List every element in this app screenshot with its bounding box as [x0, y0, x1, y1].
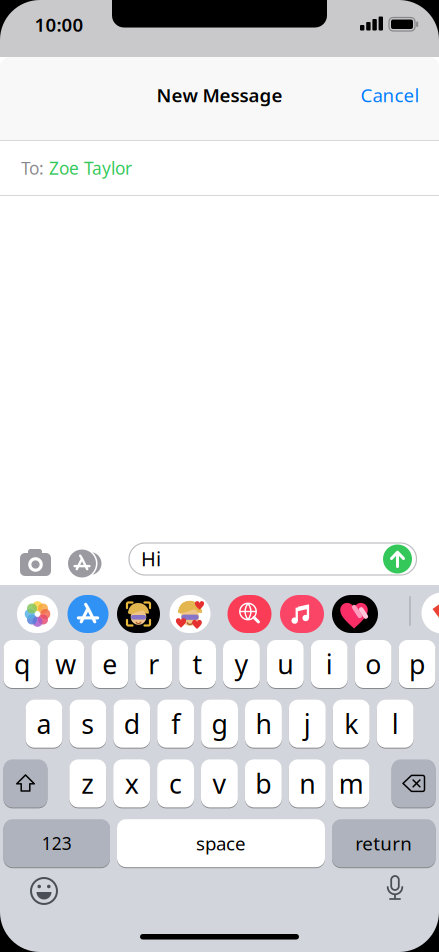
staticText: k: [344, 706, 358, 741]
button[interactable]: [14, 594, 60, 634]
staticText: h: [255, 706, 271, 741]
button[interactable]: s: [69, 699, 106, 749]
button[interactable]: p: [399, 639, 435, 689]
staticText: x: [125, 766, 139, 801]
button[interactable]: d: [113, 699, 150, 749]
button[interactable]: [65, 594, 111, 634]
staticText: To:: [21, 156, 44, 179]
button[interactable]: a: [25, 699, 62, 749]
button[interactable]: [226, 594, 272, 634]
staticText: Zoe Taylor: [49, 156, 132, 179]
button[interactable]: v: [201, 758, 238, 808]
staticText: c: [169, 766, 182, 801]
staticText: j: [304, 706, 311, 741]
staticText: 10:00: [34, 12, 83, 37]
staticText: u: [277, 646, 293, 682]
button[interactable]: x: [113, 758, 150, 808]
staticText: return: [355, 831, 412, 856]
staticText: m: [339, 766, 364, 801]
button[interactable]: t: [179, 639, 216, 689]
button[interactable]: [421, 592, 439, 633]
staticText: a: [36, 706, 51, 741]
staticText: l: [392, 706, 399, 741]
button[interactable]: [382, 874, 408, 904]
button[interactable]: c: [157, 758, 194, 808]
button[interactable]: m: [333, 758, 370, 808]
button[interactable]: b: [245, 758, 282, 808]
button[interactable]: j: [289, 699, 326, 749]
button[interactable]: [19, 549, 51, 577]
staticText: v: [212, 766, 226, 801]
button[interactable]: o: [355, 639, 392, 689]
staticText: 123: [42, 832, 72, 855]
staticText: t: [192, 646, 202, 682]
button[interactable]: u: [267, 639, 304, 689]
staticText: z: [81, 766, 94, 801]
staticText: s: [81, 706, 94, 741]
staticText: w: [55, 646, 76, 682]
button[interactable]: [332, 594, 378, 634]
button[interactable]: [392, 758, 435, 808]
button[interactable]: [167, 594, 213, 634]
staticText: New Message: [156, 83, 282, 107]
button[interactable]: [66, 547, 106, 579]
staticText: q: [14, 646, 30, 682]
button[interactable]: Cancel: [335, 75, 439, 115]
staticText: o: [365, 646, 381, 682]
staticText: f: [171, 706, 180, 741]
button[interactable]: f: [157, 699, 194, 749]
button[interactable]: [3, 758, 47, 808]
staticText: e: [102, 646, 117, 682]
staticText: y: [234, 646, 248, 682]
staticText: d: [124, 706, 140, 741]
button[interactable]: y: [223, 639, 260, 689]
button[interactable]: [28, 875, 60, 907]
button[interactable]: e: [91, 639, 128, 689]
button[interactable]: n: [289, 758, 326, 808]
button[interactable]: h: [245, 699, 282, 749]
staticText: r: [148, 646, 159, 682]
staticText: b: [255, 766, 271, 801]
button[interactable]: [115, 594, 161, 634]
staticText: Cancel: [360, 83, 419, 107]
button[interactable]: 123: [3, 818, 110, 868]
button[interactable]: return: [332, 818, 435, 868]
button[interactable]: [279, 594, 325, 634]
button[interactable]: l: [377, 699, 414, 749]
button[interactable]: space: [117, 818, 325, 868]
staticText: p: [409, 646, 425, 682]
button[interactable]: g: [201, 699, 238, 749]
button[interactable]: q: [3, 639, 40, 689]
button[interactable]: w: [47, 639, 84, 689]
button[interactable]: i: [311, 639, 348, 689]
button[interactable]: [382, 544, 412, 574]
staticText: Hi: [141, 545, 161, 572]
button[interactable]: z: [69, 758, 106, 808]
staticText: i: [326, 646, 333, 682]
button[interactable]: k: [333, 699, 370, 749]
staticText: n: [299, 766, 315, 801]
button[interactable]: r: [135, 639, 172, 689]
staticText: space: [196, 831, 246, 856]
staticText: g: [211, 706, 227, 741]
button[interactable]: To:: [21, 141, 439, 195]
